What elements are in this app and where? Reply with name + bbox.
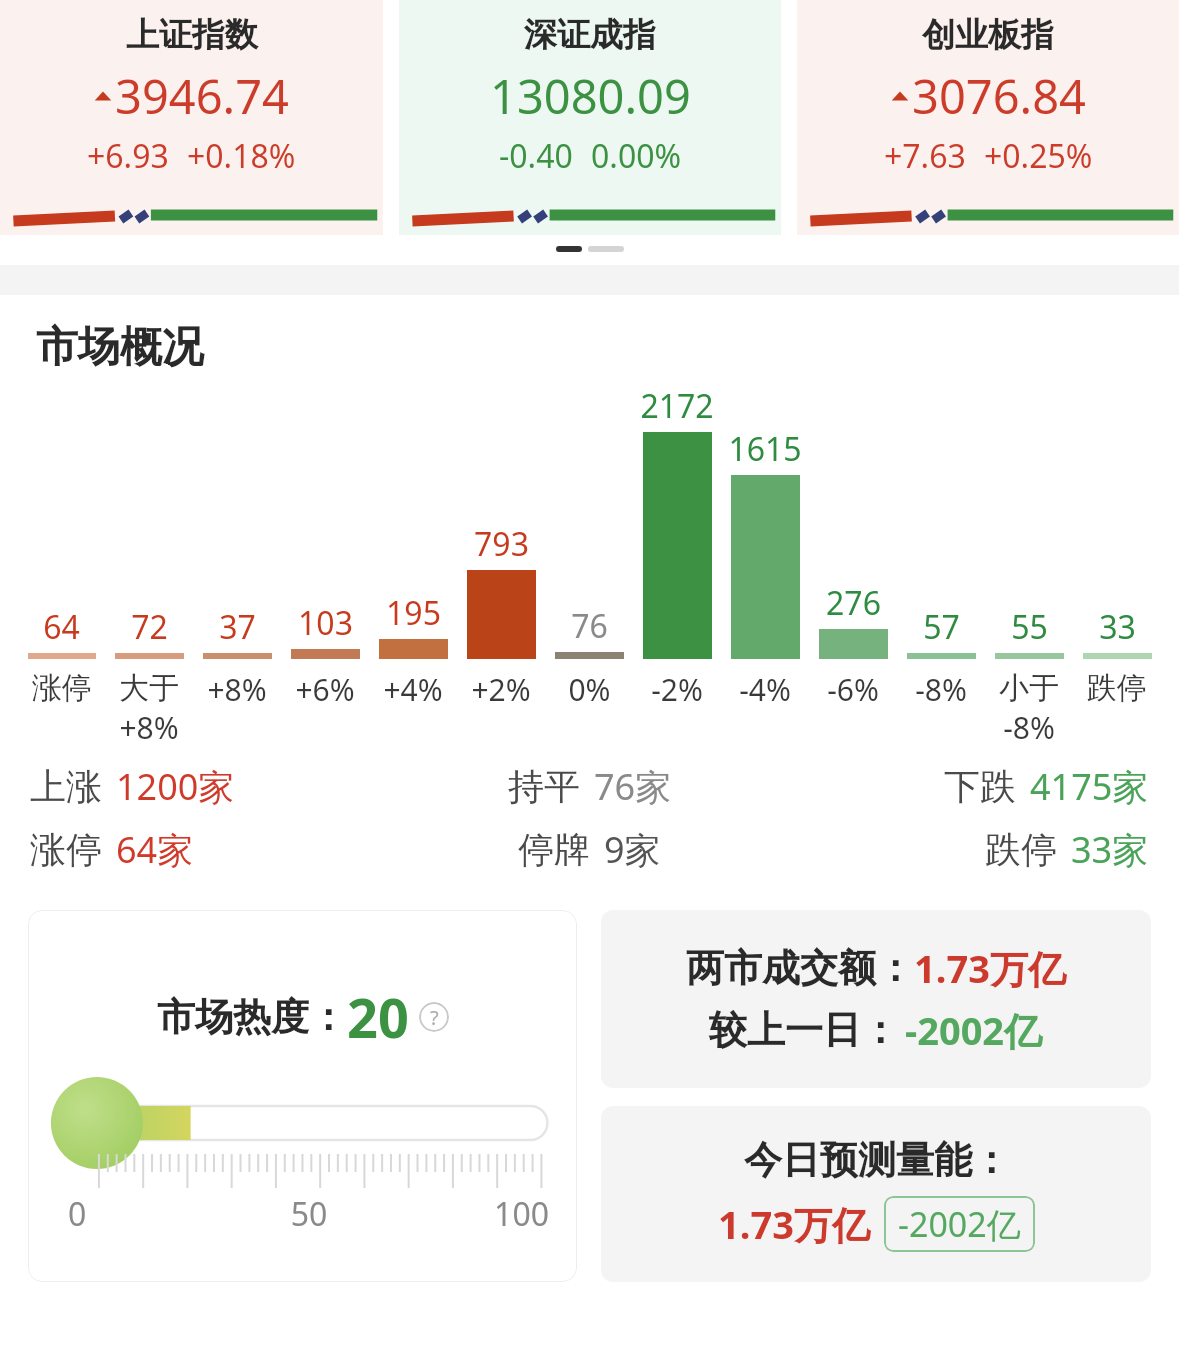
staticText: 1615 bbox=[728, 427, 802, 471]
staticText: 持平 bbox=[508, 764, 580, 809]
staticText: 深证成指 bbox=[524, 14, 656, 56]
button[interactable]: 创业板指 bbox=[797, 0, 1179, 235]
button[interactable]: 793 bbox=[457, 384, 545, 710]
staticText: 停牌 bbox=[518, 827, 590, 872]
staticText: 9家 bbox=[604, 825, 661, 874]
staticText: 100 bbox=[389, 1192, 549, 1236]
button[interactable]: 市场热度： bbox=[28, 910, 577, 1282]
button[interactable]: 深证成指 bbox=[399, 0, 781, 235]
staticText: 0% bbox=[568, 669, 611, 710]
staticText: 72 bbox=[131, 605, 168, 649]
staticText: 103 bbox=[298, 601, 353, 645]
staticText: -2002亿 bbox=[898, 1201, 1021, 1247]
button[interactable]: 今日预测量能： bbox=[601, 1106, 1151, 1282]
button[interactable]: 57 bbox=[897, 384, 985, 710]
staticText: 两市成交额： bbox=[686, 944, 914, 992]
button[interactable]: 195 bbox=[369, 384, 457, 710]
staticText: 1200家 bbox=[116, 762, 235, 811]
staticText: 13080.09 bbox=[490, 64, 691, 128]
staticText: 涨停 bbox=[32, 669, 92, 707]
staticText: 小于 bbox=[999, 669, 1059, 707]
staticText: 33 bbox=[1099, 605, 1136, 649]
staticText: 55 bbox=[1011, 605, 1048, 649]
staticText: 创业板指 bbox=[922, 14, 1054, 56]
staticText: +8% bbox=[207, 669, 267, 710]
staticText: ? bbox=[430, 1004, 439, 1031]
button[interactable]: 两市成交额： bbox=[601, 910, 1151, 1088]
staticText: 今日预测量能： bbox=[744, 1136, 1010, 1184]
staticText: 793 bbox=[474, 522, 529, 566]
staticText: 37 bbox=[219, 605, 256, 649]
staticText: 76家 bbox=[594, 762, 672, 811]
staticText: 2172 bbox=[640, 384, 714, 428]
staticText: +0.25% bbox=[984, 134, 1093, 178]
staticText: 跌停 bbox=[1087, 669, 1147, 707]
button[interactable]: 33 bbox=[1073, 384, 1161, 707]
staticText: +0.18% bbox=[187, 134, 296, 178]
staticText: +2% bbox=[471, 669, 531, 710]
staticText: -4% bbox=[739, 669, 791, 710]
staticText: 3946.74 bbox=[115, 64, 289, 128]
button[interactable]: 37 bbox=[193, 384, 281, 710]
staticText: 50 bbox=[229, 1192, 389, 1236]
staticText: 跌停 bbox=[985, 827, 1057, 872]
staticText: 上证指数 bbox=[126, 14, 258, 56]
button[interactable]: 1615 bbox=[721, 384, 809, 710]
staticText: 0 bbox=[68, 1192, 229, 1236]
button[interactable]: 55 bbox=[985, 384, 1073, 748]
staticText: 较上一日： bbox=[709, 1006, 899, 1054]
staticText: 195 bbox=[386, 591, 441, 635]
staticText: 上涨 bbox=[30, 764, 102, 809]
button[interactable]: 76 bbox=[545, 384, 633, 710]
button[interactable]: 64 bbox=[18, 384, 105, 707]
staticText: 64 bbox=[43, 605, 80, 649]
staticText: -8% bbox=[1003, 707, 1055, 748]
staticText: 市场热度： bbox=[157, 993, 347, 1041]
staticText: -0.40 bbox=[499, 134, 573, 178]
staticText: 1.73万亿 bbox=[718, 1198, 870, 1250]
staticText: 4175家 bbox=[1030, 762, 1149, 811]
staticText: 1.73万亿 bbox=[914, 942, 1066, 994]
button[interactable]: 帮助说明 bbox=[419, 1002, 449, 1032]
staticText: -8% bbox=[915, 669, 967, 710]
button[interactable]: 276 bbox=[809, 384, 897, 710]
staticText: 0.00% bbox=[591, 134, 682, 178]
staticText: 涨停 bbox=[30, 827, 102, 872]
staticText: +8% bbox=[119, 707, 179, 748]
staticText: 下跌 bbox=[944, 764, 1016, 809]
staticText: +6% bbox=[295, 669, 355, 710]
button[interactable]: 103 bbox=[281, 384, 369, 710]
staticText: 3076.84 bbox=[912, 64, 1086, 128]
staticText: 76 bbox=[571, 604, 608, 648]
staticText: +6.93 bbox=[87, 134, 169, 178]
staticText: 20 bbox=[347, 980, 409, 1054]
button[interactable]: 72 bbox=[105, 384, 193, 748]
staticText: +4% bbox=[383, 669, 443, 710]
button[interactable]: 上证指数 bbox=[0, 0, 383, 235]
staticText: 57 bbox=[923, 605, 960, 649]
staticText: 市场概况 bbox=[36, 321, 204, 374]
staticText: 64家 bbox=[116, 825, 194, 874]
button[interactable]: 2172 bbox=[633, 384, 721, 710]
staticText: 大于 bbox=[119, 669, 179, 707]
staticText: 33家 bbox=[1071, 825, 1149, 874]
staticText: -2% bbox=[651, 669, 703, 710]
staticText: -6% bbox=[827, 669, 879, 710]
staticText: +7.63 bbox=[884, 134, 966, 178]
staticText: -2002亿 bbox=[905, 1004, 1043, 1056]
staticText: 276 bbox=[826, 581, 881, 625]
